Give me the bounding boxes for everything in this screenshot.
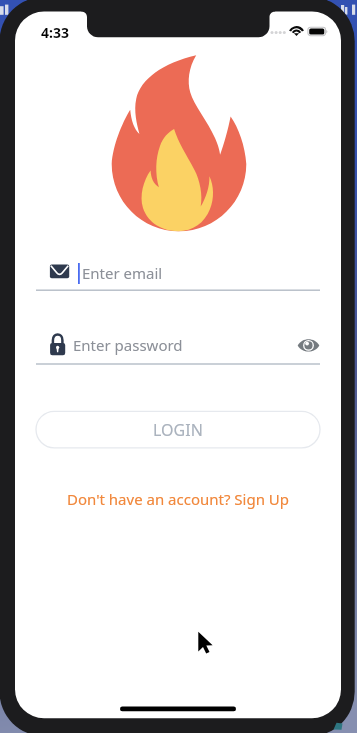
button[interactable]: Show password xyxy=(294,331,323,360)
staticText: Enter password xyxy=(73,335,183,355)
staticText: Don't have an account? Sign Up xyxy=(67,489,290,509)
button[interactable]: LOGIN xyxy=(36,411,320,448)
staticText: Enter email xyxy=(82,263,163,283)
staticText: LOGIN xyxy=(153,419,203,441)
staticText: 4:33 xyxy=(41,23,69,42)
button[interactable]: Don't have an account? Sign Up xyxy=(60,487,297,511)
